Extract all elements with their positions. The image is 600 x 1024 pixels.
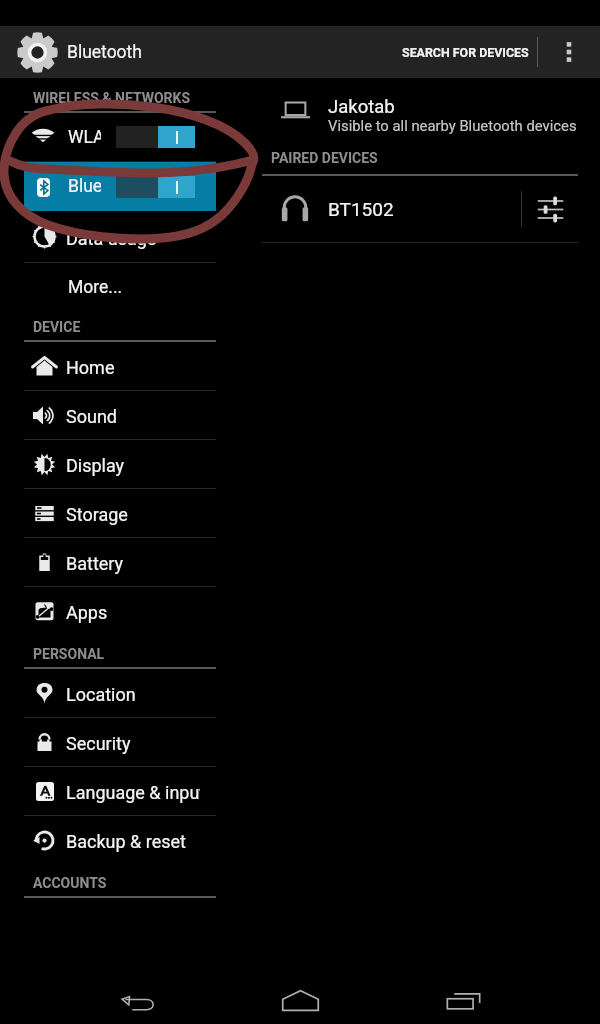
staticText: ACCOUNTS	[33, 875, 107, 891]
button[interactable]: More options	[538, 26, 600, 78]
staticText: Backup & reset	[66, 831, 186, 852]
button[interactable]: Bluetooth	[0, 26, 150, 78]
staticText: Location	[66, 684, 136, 705]
button[interactable]: Home	[276, 983, 324, 1017]
staticText: Sound	[66, 406, 117, 427]
staticText: Security	[66, 733, 131, 754]
staticText: PERSONAL	[33, 646, 105, 662]
staticText: Jakotab	[328, 96, 395, 118]
button[interactable]: Sound	[0, 391, 262, 439]
button[interactable]: BT1502	[262, 176, 578, 242]
staticText: Visible to all nearby Bluetooth devices	[328, 117, 577, 134]
staticText: WIRELESS & NETWORKS	[33, 90, 191, 106]
staticText: Storage	[66, 504, 128, 525]
staticText: WLAN	[68, 127, 101, 148]
staticText: Bluetooth	[67, 42, 142, 63]
button[interactable]: Data usage	[0, 211, 262, 262]
staticText: DEVICE	[33, 319, 81, 335]
staticText: More...	[68, 277, 123, 298]
button[interactable]: WLAN switch	[116, 126, 195, 148]
button[interactable]: Jakotab	[262, 84, 578, 136]
button[interactable]: Backup & reset	[0, 816, 262, 864]
button[interactable]: Storage	[0, 489, 262, 537]
button[interactable]: More...	[0, 263, 262, 312]
button[interactable]: Bluetooth switch	[116, 176, 195, 198]
staticText: SEARCH FOR DEVICES	[402, 45, 529, 60]
button[interactable]: Bluetooth	[24, 162, 216, 211]
button[interactable]: Device settings	[522, 176, 578, 242]
staticText: PAIRED DEVICES	[271, 150, 378, 166]
staticText: Bluetooth	[68, 176, 101, 197]
staticText: Language & input	[66, 782, 200, 803]
button[interactable]: WLAN	[24, 113, 216, 161]
button[interactable]: Display	[0, 440, 262, 488]
button[interactable]: Home	[0, 342, 262, 390]
button[interactable]: Language & input	[0, 767, 262, 815]
button[interactable]: SEARCH FOR DEVICES	[388, 26, 537, 78]
staticText: Display	[66, 455, 125, 476]
staticText: Data usage	[66, 228, 157, 249]
button[interactable]: Battery	[0, 538, 262, 586]
staticText: Battery	[66, 553, 124, 574]
staticText: Home	[66, 357, 115, 378]
button[interactable]: Back	[113, 986, 165, 1020]
button[interactable]: Apps	[0, 587, 262, 635]
staticText: BT1502	[328, 198, 394, 220]
button[interactable]: Recents	[439, 983, 487, 1017]
staticText: Apps	[66, 602, 108, 623]
button[interactable]: Location	[0, 669, 262, 717]
button[interactable]: Security	[0, 718, 262, 766]
